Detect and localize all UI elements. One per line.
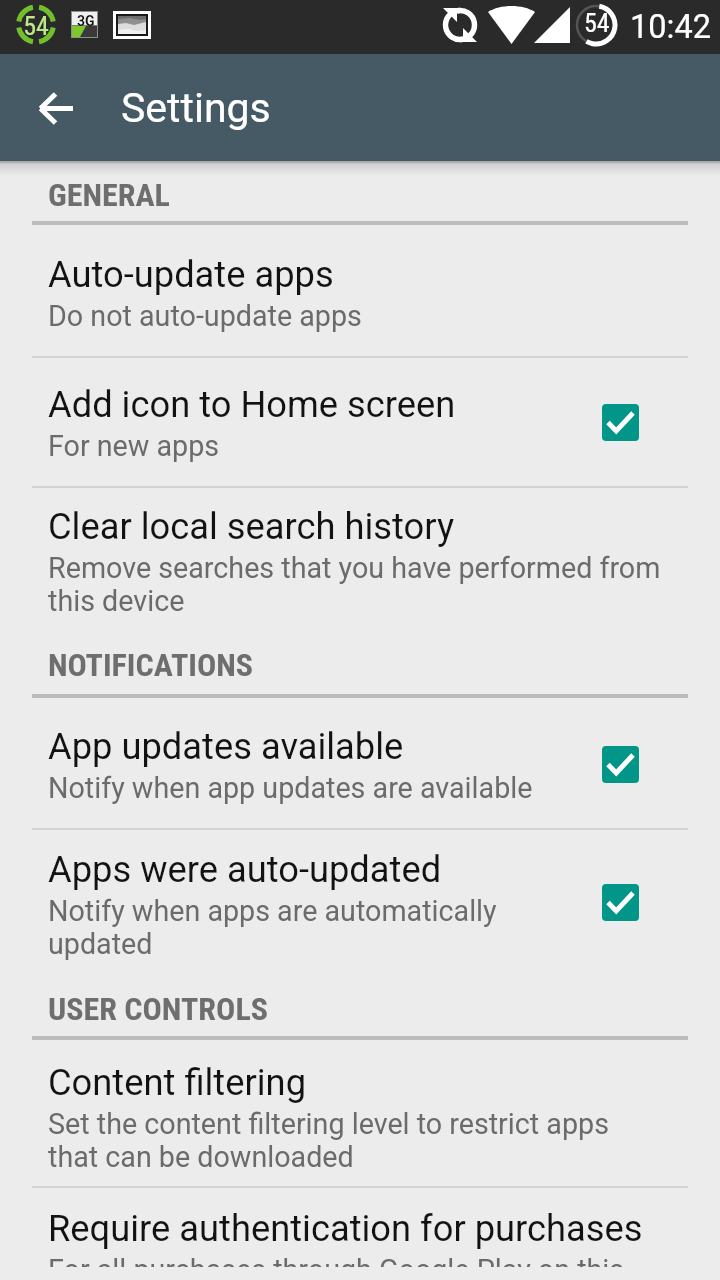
staticText: Notify when app updates are available: [48, 772, 533, 805]
staticText: For new apps: [48, 430, 220, 463]
staticText: Remove searches that you have performed …: [48, 552, 663, 618]
staticText: App updates available: [48, 725, 404, 767]
button[interactable]: Navigate up: [23, 75, 89, 141]
staticText: GENERAL: [48, 176, 170, 214]
staticText: For all purchases through Google Play on…: [48, 1254, 663, 1267]
staticText: Content filtering: [48, 1061, 307, 1103]
staticText: 54: [23, 9, 49, 42]
button[interactable]: Auto-update apps: [0, 225, 720, 358]
button[interactable]: Apps were auto-updated: [0, 830, 720, 977]
button[interactable]: Require authentication for purchases: [0, 1188, 720, 1280]
staticText: NOTIFICATIONS: [48, 646, 254, 684]
staticText: Notify when apps are automatically updat…: [48, 895, 568, 961]
staticText: Require authentication for purchases: [48, 1207, 643, 1249]
button[interactable]: Toggle setting: [602, 746, 639, 783]
button[interactable]: App updates available: [0, 698, 720, 830]
button[interactable]: Add icon to Home screen: [0, 358, 720, 488]
staticText: 54: [584, 9, 610, 38]
button[interactable]: Content filtering: [0, 1040, 720, 1188]
staticText: Apps were auto-updated: [48, 848, 442, 890]
button[interactable]: Clear local search history: [0, 488, 720, 634]
staticText: Do not auto-update apps: [48, 300, 362, 333]
staticText: USER CONTROLS: [48, 990, 268, 1028]
button[interactable]: Toggle setting: [602, 884, 639, 921]
staticText: 10:42: [630, 8, 711, 46]
button[interactable]: Toggle setting: [602, 404, 639, 441]
staticText: Settings: [121, 84, 271, 132]
staticText: Add icon to Home screen: [48, 383, 456, 425]
staticText: Clear local search history: [48, 505, 455, 547]
staticText: Auto-update apps: [48, 253, 334, 295]
staticText: Set the content filtering level to restr…: [48, 1108, 663, 1174]
staticText: 3G: [77, 13, 95, 29]
